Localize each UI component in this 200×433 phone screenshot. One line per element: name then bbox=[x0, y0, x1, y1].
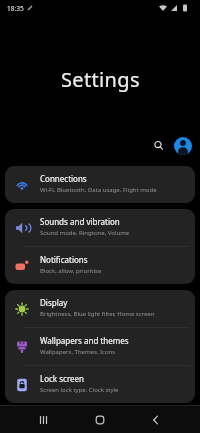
button[interactable]: Lock screen bbox=[5, 366, 195, 403]
staticText: Settings bbox=[61, 66, 140, 93]
button[interactable]: Wallpapers and themes bbox=[5, 328, 195, 365]
staticText: Connections bbox=[40, 173, 87, 184]
staticText: Lock screen bbox=[40, 373, 85, 384]
staticText: Wallpapers and themes bbox=[40, 335, 129, 346]
staticText: Wallpapers, Themes, Icons bbox=[40, 348, 116, 356]
button[interactable]: Sounds and vibration bbox=[5, 209, 195, 246]
button[interactable] bbox=[16, 406, 72, 433]
staticText: Sound mode, Ringtone, Volume bbox=[40, 229, 130, 237]
staticText: Display bbox=[40, 297, 68, 308]
staticText: Brightness, Blue light filter, Home scre… bbox=[40, 310, 155, 318]
button[interactable]: Connections bbox=[5, 166, 195, 203]
button[interactable]: Display bbox=[5, 290, 195, 327]
staticText: Wi-Fi, Bluetooth, Data usage, Flight mod… bbox=[40, 186, 157, 194]
staticText: 18:35 bbox=[7, 4, 24, 13]
staticText: Block, allow, prioritise bbox=[40, 267, 102, 275]
staticText: Sounds and vibration bbox=[40, 216, 120, 227]
button[interactable] bbox=[147, 137, 171, 155]
button[interactable]: Notifications bbox=[5, 247, 195, 284]
button[interactable] bbox=[72, 406, 128, 433]
staticText: Notifications bbox=[40, 254, 88, 265]
button[interactable] bbox=[174, 137, 192, 155]
staticText: Screen lock type, Clock style bbox=[40, 386, 119, 394]
button[interactable] bbox=[128, 406, 184, 433]
